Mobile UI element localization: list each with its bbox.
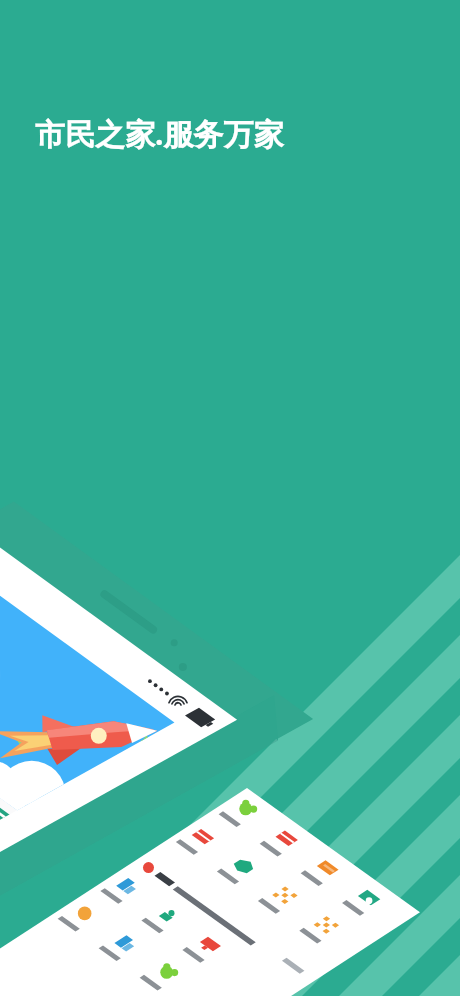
staticText: 市民之家.服务万家	[35, 113, 284, 154]
